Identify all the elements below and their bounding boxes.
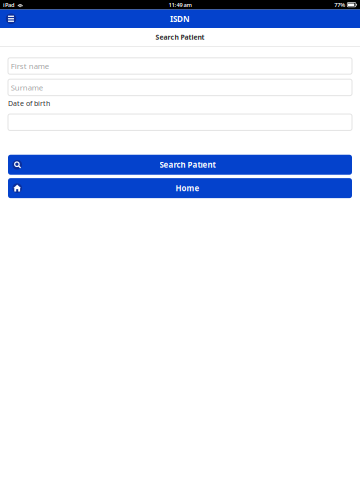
staticText: Search Patient bbox=[160, 159, 216, 170]
button[interactable]: Search Patient bbox=[8, 155, 352, 175]
button[interactable]: Home bbox=[8, 178, 352, 198]
staticText: First name bbox=[11, 61, 49, 71]
button[interactable]: Menu bbox=[3, 11, 19, 27]
staticText: 11:49 am bbox=[168, 1, 191, 9]
staticText: Home bbox=[176, 183, 200, 193]
staticText: Date of birth bbox=[8, 99, 50, 108]
staticText: Surname bbox=[11, 82, 43, 93]
staticText: iPad bbox=[3, 1, 15, 9]
staticText: 77% bbox=[334, 1, 345, 9]
staticText: ISDN bbox=[170, 13, 190, 24]
staticText: Search Patient bbox=[155, 32, 204, 42]
